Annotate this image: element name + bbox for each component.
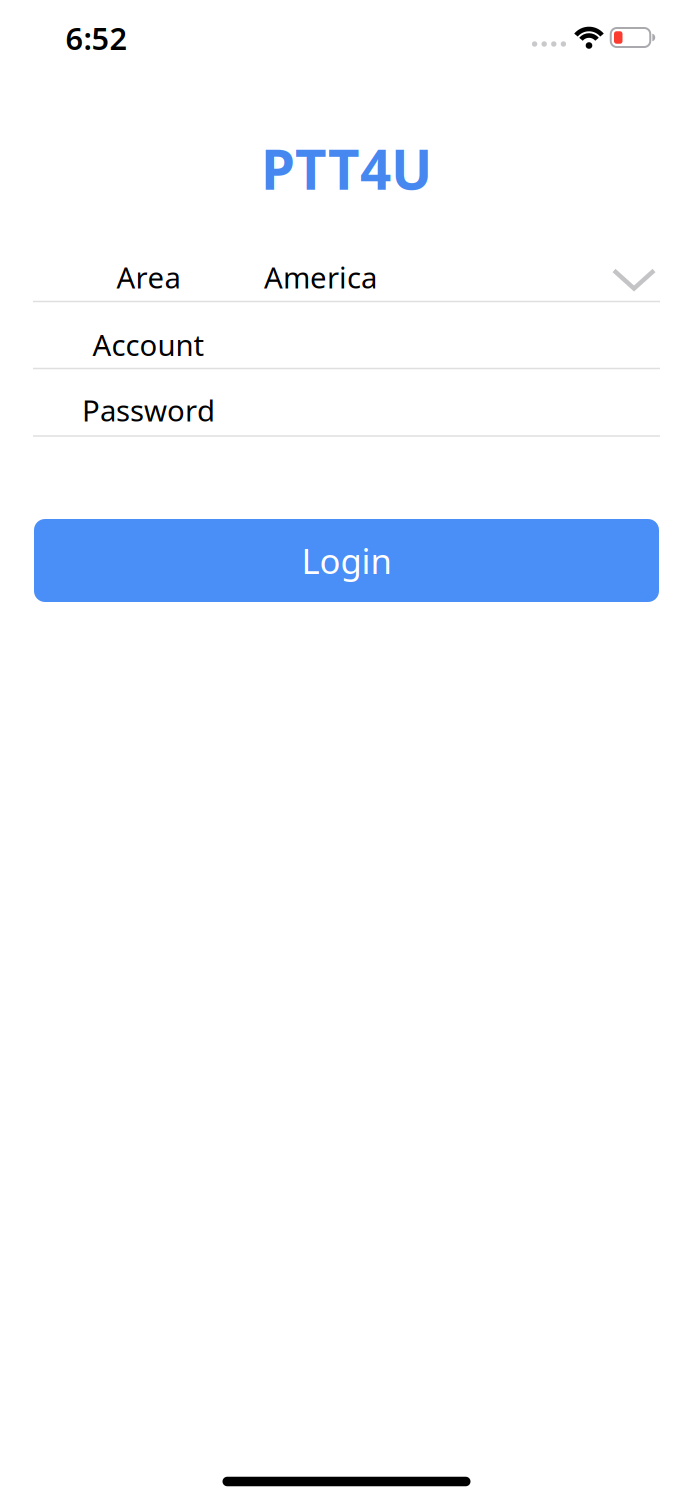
staticText: Password xyxy=(82,390,215,429)
staticText: PTT4U xyxy=(261,132,432,205)
staticText: 6:52 xyxy=(65,18,127,58)
staticText: Area xyxy=(116,257,180,296)
staticText: America xyxy=(264,257,377,296)
staticText: Account xyxy=(92,325,204,364)
button[interactable]: Login xyxy=(34,519,659,602)
button[interactable]: Area xyxy=(0,245,693,309)
staticText: Login xyxy=(301,537,391,583)
